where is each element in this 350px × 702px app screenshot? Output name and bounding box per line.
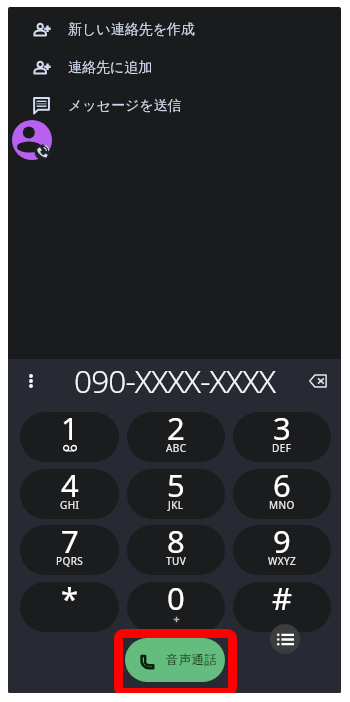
button[interactable]: 2 [127,412,225,462]
staticText: PQRS [56,554,84,568]
staticText: 090-XXXX-XXXX [74,359,276,402]
button[interactable]: 6 [233,469,331,519]
button[interactable]: Backspace [295,358,341,404]
button[interactable]: 9 [233,525,331,575]
button[interactable]: 0 [127,582,225,632]
staticText: メッセージを送信 [68,97,182,115]
button[interactable]: 連絡先に追加 [12,49,341,87]
staticText: 4 [61,469,79,506]
button[interactable]: 8 [127,525,225,575]
button[interactable]: # [233,582,331,632]
staticText: 音声通話 [166,652,218,668]
button[interactable]: Call history [270,624,300,654]
staticText: # [272,582,293,619]
staticText: * [61,582,79,619]
staticText: ABC [166,441,187,455]
staticText: MNO [269,498,295,512]
staticText: 1 [61,412,79,449]
staticText: 新しい連絡先を作成 [68,21,195,39]
staticText: 3 [273,412,291,449]
staticText: 0 [167,582,185,619]
staticText: DEF [272,441,292,455]
staticText: JKL [168,498,184,512]
staticText: 2 [167,412,185,449]
button[interactable]: 7 [20,525,119,575]
button[interactable]: 5 [127,469,225,519]
staticText: TUV [166,554,187,568]
button[interactable]: 新しい連絡先を作成 [12,11,341,49]
button[interactable]: メッセージを送信 [12,87,341,125]
button[interactable]: * [20,582,119,632]
button[interactable]: 音声通話 [125,638,225,682]
staticText: 連絡先に追加 [68,59,153,77]
button[interactable]: More options [8,358,54,404]
staticText: 5 [167,469,185,506]
button[interactable]: 4 [20,469,119,519]
staticText: 8 [167,525,185,562]
staticText: WXYZ [268,554,297,568]
button[interactable]: 1 [20,412,119,462]
staticText: 6 [273,469,291,506]
button[interactable]: 3 [233,412,331,462]
staticText: GHI [60,498,80,512]
staticText: 9 [273,525,291,562]
staticText: 7 [61,525,79,562]
